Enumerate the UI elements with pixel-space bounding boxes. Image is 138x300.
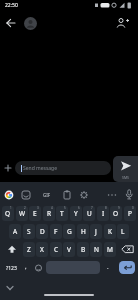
- staticText: 5: [64, 206, 66, 210]
- staticText: 8: [105, 206, 107, 210]
- button[interactable]: [119, 261, 135, 274]
- staticText: Y: [74, 209, 78, 218]
- button[interactable]: F: [50, 224, 62, 239]
- staticText: M: [107, 245, 113, 254]
- button[interactable]: E: [29, 206, 41, 221]
- button[interactable]: P: [124, 206, 136, 221]
- staticText: 9: [118, 206, 120, 210]
- staticText: X: [40, 245, 44, 254]
- staticText: Z: [27, 245, 31, 254]
- button[interactable]: H: [77, 224, 89, 239]
- staticText: 4: [51, 206, 53, 210]
- button[interactable]: O: [110, 206, 122, 221]
- button[interactable]: [61, 189, 73, 201]
- button[interactable]: ?123: [2, 261, 21, 275]
- button[interactable]: T: [56, 206, 68, 221]
- button[interactable]: SMS: [113, 156, 138, 182]
- button[interactable]: [20, 189, 32, 201]
- staticText: S: [27, 227, 31, 236]
- staticText: G: [67, 227, 72, 236]
- staticText: 22:50: [5, 2, 18, 9]
- button[interactable]: [4, 283, 16, 293]
- staticText: K: [108, 227, 113, 236]
- staticText: .: [107, 263, 109, 271]
- staticText: C: [54, 245, 59, 254]
- staticText: U: [87, 209, 92, 218]
- staticText: GIF: [43, 192, 51, 198]
- button[interactable]: G: [63, 224, 75, 239]
- button[interactable]: V: [63, 242, 75, 257]
- button[interactable]: [3, 189, 15, 201]
- staticText: R: [47, 209, 52, 218]
- button[interactable]: Q: [2, 206, 14, 221]
- button[interactable]: [46, 261, 100, 274]
- staticText: 2: [24, 206, 26, 210]
- button[interactable]: Send message: [15, 161, 111, 175]
- button[interactable]: [2, 162, 14, 174]
- staticText: ?123: [6, 265, 17, 272]
- staticText: 7: [91, 206, 93, 210]
- button[interactable]: [4, 16, 18, 30]
- button[interactable]: [32, 261, 45, 275]
- button[interactable]: Z: [23, 242, 35, 257]
- staticText: B: [81, 245, 86, 254]
- button[interactable]: [24, 17, 37, 30]
- button[interactable]: J: [90, 224, 102, 239]
- staticText: ,: [25, 263, 27, 271]
- button[interactable]: N: [90, 242, 102, 257]
- staticText: J: [95, 227, 97, 236]
- button[interactable]: R: [43, 206, 55, 221]
- button[interactable]: .: [101, 261, 114, 275]
- staticText: 1: [10, 206, 12, 210]
- button[interactable]: [114, 16, 130, 30]
- staticText: L: [121, 227, 125, 236]
- button[interactable]: K: [104, 224, 116, 239]
- staticText: 3: [37, 206, 39, 210]
- staticText: H: [81, 227, 86, 236]
- button[interactable]: U: [83, 206, 95, 221]
- button[interactable]: GIF: [40, 189, 54, 201]
- button[interactable]: [106, 189, 118, 201]
- staticText: Send message: [23, 165, 58, 172]
- staticText: 6: [78, 206, 80, 210]
- button[interactable]: L: [117, 224, 129, 239]
- staticText: T: [60, 209, 64, 218]
- button[interactable]: [78, 189, 90, 201]
- button[interactable]: D: [36, 224, 48, 239]
- button[interactable]: B: [77, 242, 89, 257]
- staticText: V: [67, 245, 71, 254]
- staticText: SMS: [122, 175, 130, 180]
- staticText: Q: [5, 209, 11, 218]
- staticText: E: [33, 209, 37, 218]
- staticText: O: [113, 209, 119, 218]
- staticText: D: [40, 227, 45, 236]
- button[interactable]: W: [16, 206, 28, 221]
- button[interactable]: C: [50, 242, 62, 257]
- staticText: F: [54, 227, 58, 236]
- button[interactable]: A: [9, 224, 21, 239]
- button[interactable]: S: [23, 224, 35, 239]
- staticText: W: [19, 209, 26, 218]
- button[interactable]: X: [36, 242, 48, 257]
- staticText: 0: [132, 206, 134, 210]
- button[interactable]: M: [104, 242, 116, 257]
- button[interactable]: ,: [21, 261, 31, 275]
- staticText: P: [128, 209, 132, 218]
- staticText: A: [13, 227, 18, 236]
- button[interactable]: [118, 242, 137, 257]
- button[interactable]: [123, 188, 135, 201]
- staticText: I: [102, 209, 105, 218]
- button[interactable]: Y: [70, 206, 82, 221]
- button[interactable]: [2, 242, 21, 257]
- staticText: N: [94, 245, 99, 254]
- button[interactable]: I: [97, 206, 109, 221]
